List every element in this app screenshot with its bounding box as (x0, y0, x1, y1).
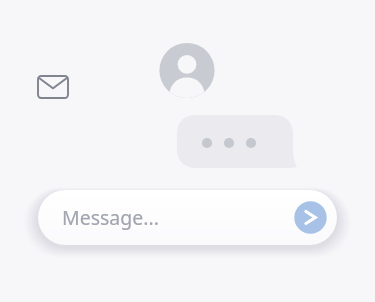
button[interactable]: Send (294, 201, 327, 234)
button[interactable]: Message... (38, 190, 308, 245)
button[interactable]: Contact avatar (157, 41, 217, 101)
button[interactable]: Inbox (30, 68, 76, 106)
staticText: Message... (62, 204, 159, 231)
button[interactable]: Typing indicator (173, 111, 299, 173)
